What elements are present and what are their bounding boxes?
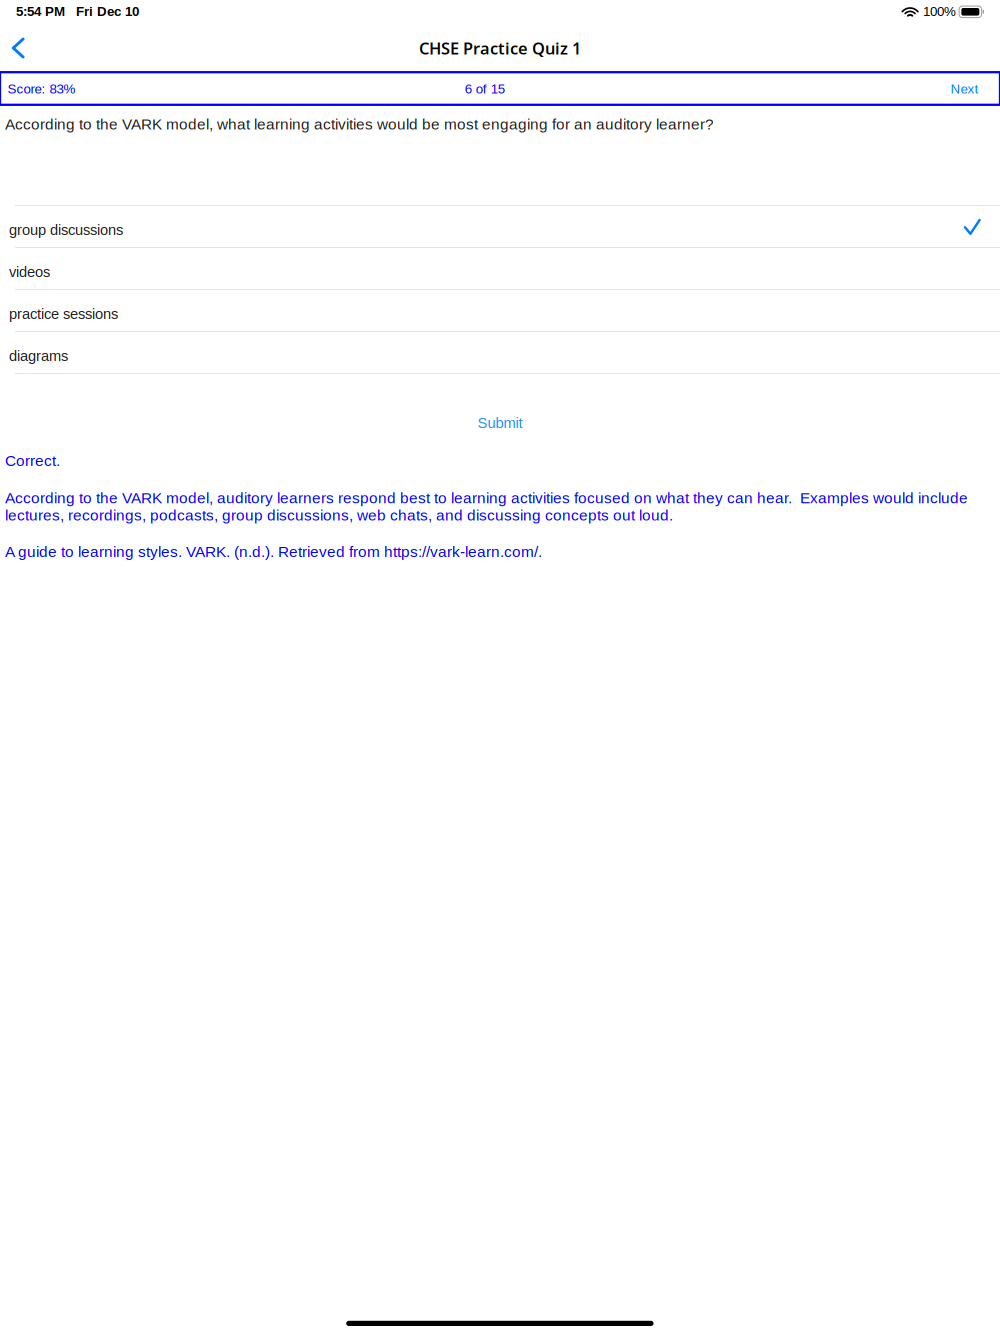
staticText: According to the VARK model, what learni… <box>5 116 714 133</box>
staticText: 100% <box>923 4 956 19</box>
button[interactable]: group discussions <box>0 206 1000 248</box>
staticText: diagrams <box>9 348 68 364</box>
staticText: group discussions <box>9 222 123 238</box>
staticText: Score: 83% <box>8 82 76 96</box>
staticText: 5:54 PM <box>16 4 65 19</box>
staticText: According to the VARK model, auditory le… <box>5 489 968 524</box>
staticText: Next <box>950 82 978 96</box>
button[interactable]: videos <box>0 248 1000 290</box>
button[interactable]: practice sessions <box>0 290 1000 332</box>
button[interactable]: Back <box>0 30 37 66</box>
staticText: practice sessions <box>9 306 118 322</box>
button[interactable]: Next <box>858 81 978 96</box>
staticText: videos <box>9 264 50 280</box>
staticText: Correct. <box>5 452 60 469</box>
staticText: CHSE Practice Quiz 1 <box>419 37 581 59</box>
button[interactable]: diagrams <box>0 332 1000 374</box>
button[interactable]: Submit <box>0 415 1000 431</box>
staticText: Submit <box>477 415 522 431</box>
staticText: 6 of 15 <box>465 82 505 96</box>
staticText: Fri Dec 10 <box>76 4 139 19</box>
staticText: A guide to learning styles. VARK. (n.d.)… <box>5 543 542 560</box>
